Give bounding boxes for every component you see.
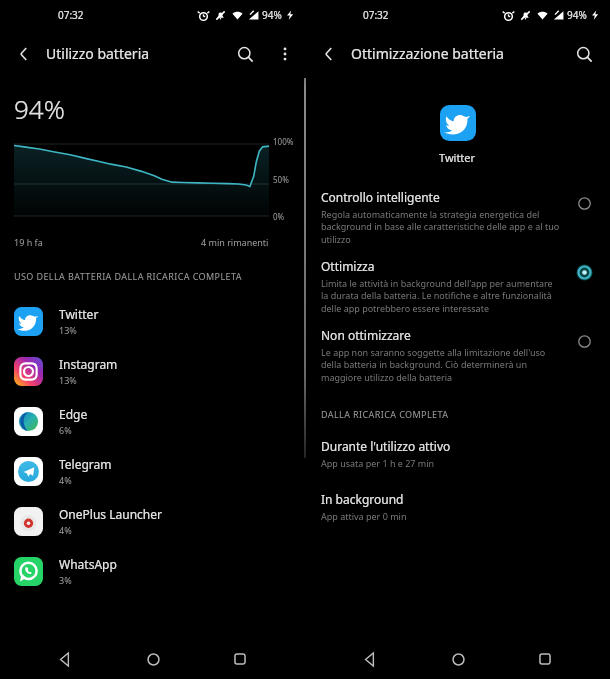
- staticText: Twitter: [59, 306, 99, 322]
- button[interactable]: Back: [348, 639, 392, 679]
- staticText: 4%: [59, 474, 72, 486]
- button[interactable]: WhatsApp: [0, 546, 305, 596]
- staticText: WhatsApp: [59, 556, 117, 572]
- button[interactable]: Search: [564, 34, 604, 74]
- button[interactable]: Controllo intelligente: [305, 189, 610, 246]
- staticText: In background: [321, 491, 404, 507]
- staticText: 13%: [59, 324, 77, 336]
- staticText: 4 min rimanenti: [201, 236, 269, 248]
- button[interactable]: Durante l'utilizzo attivo: [305, 438, 610, 469]
- staticText: Instagram: [59, 356, 118, 372]
- staticText: DALLA RICARICA COMPLETA: [321, 408, 449, 420]
- button[interactable]: Edge: [0, 396, 305, 446]
- staticText: Twitter: [439, 150, 476, 165]
- staticText: 94%: [262, 8, 282, 22]
- button[interactable]: Back: [311, 36, 347, 72]
- button[interactable]: Twitter: [0, 296, 305, 346]
- button[interactable]: In background: [305, 491, 610, 522]
- staticText: App usata per 1 h e 27 min: [321, 457, 435, 469]
- button[interactable]: Home: [131, 639, 175, 679]
- staticText: Limita le attività in background dell'ap…: [321, 277, 560, 315]
- button[interactable]: Back: [43, 639, 87, 679]
- staticText: Non ottimizzare: [321, 327, 411, 343]
- staticText: 4%: [59, 524, 72, 536]
- staticText: 3%: [59, 574, 72, 586]
- button[interactable]: Recents: [218, 639, 262, 679]
- button[interactable]: Ottimizza: [305, 258, 610, 315]
- staticText: Telegram: [59, 456, 112, 472]
- staticText: 19 h fa: [14, 236, 43, 248]
- button[interactable]: Telegram: [0, 446, 305, 496]
- staticText: 07:32: [58, 8, 84, 22]
- staticText: Controllo intelligente: [321, 189, 440, 205]
- staticText: Utilizzo batteria: [46, 44, 225, 63]
- button[interactable]: Home: [436, 639, 480, 679]
- staticText: 13%: [59, 374, 77, 386]
- staticText: Durante l'utilizzo attivo: [321, 438, 451, 454]
- staticText: OnePlus Launcher: [59, 506, 162, 522]
- staticText: USO DELLA BATTERIA DALLA RICARICA COMPLE…: [14, 270, 242, 282]
- staticText: 0%: [273, 211, 285, 222]
- staticText: 94%: [14, 91, 65, 126]
- staticText: Edge: [59, 406, 88, 422]
- staticText: 100%: [273, 136, 294, 147]
- button[interactable]: Search: [225, 34, 265, 74]
- button[interactable]: Non ottimizzare: [305, 327, 610, 384]
- button[interactable]: OnePlus Launcher: [0, 496, 305, 546]
- staticText: Ottimizza: [321, 258, 375, 274]
- staticText: 6%: [59, 424, 72, 436]
- staticText: Regola automaticamente la strategia ener…: [321, 208, 560, 246]
- staticText: Le app non saranno soggette alla limitaz…: [321, 346, 560, 384]
- staticText: Ottimizzazione batteria: [351, 44, 564, 63]
- button[interactable]: More options: [265, 34, 305, 74]
- staticText: 94%: [567, 8, 587, 22]
- button[interactable]: Recents: [523, 639, 567, 679]
- staticText: 07:32: [363, 8, 389, 22]
- button[interactable]: Back: [6, 36, 42, 72]
- staticText: 50%: [273, 174, 289, 185]
- staticText: App attiva per 0 min: [321, 510, 407, 522]
- button[interactable]: Instagram: [0, 346, 305, 396]
